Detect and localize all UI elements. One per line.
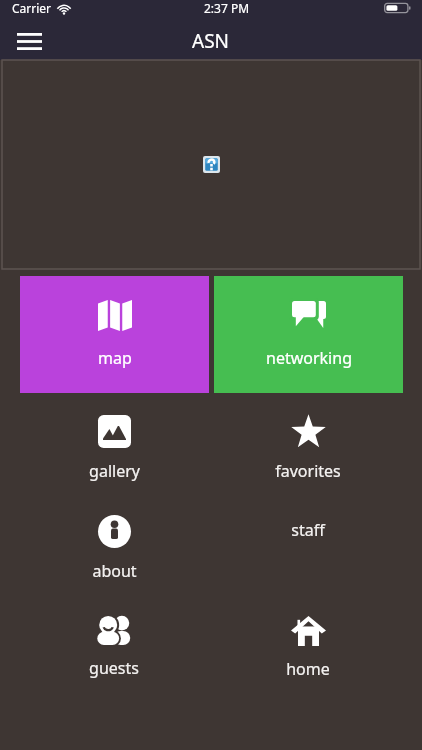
button[interactable]: Banner image (2, 60, 420, 269)
staticText: guests (89, 657, 139, 679)
staticText: Carrier (12, 0, 52, 16)
staticText: map (98, 347, 132, 369)
button[interactable]: favorites (251, 405, 365, 483)
button[interactable]: map (20, 276, 209, 393)
staticText: gallery (89, 460, 140, 482)
staticText: about (92, 560, 137, 582)
button[interactable]: about (57, 505, 171, 583)
button[interactable]: home (251, 605, 365, 683)
button[interactable]: guests (57, 605, 171, 683)
button[interactable]: networking (214, 276, 403, 393)
staticText: staff (291, 519, 325, 541)
staticText: home (286, 658, 330, 680)
staticText: networking (266, 347, 352, 369)
staticText: favorites (275, 460, 341, 482)
staticText: 2:37 PM (204, 0, 250, 16)
button[interactable]: Open navigation menu (7, 22, 51, 60)
staticText: ASN (192, 28, 230, 54)
button[interactable]: gallery (57, 405, 171, 483)
button[interactable]: staff (251, 505, 365, 583)
